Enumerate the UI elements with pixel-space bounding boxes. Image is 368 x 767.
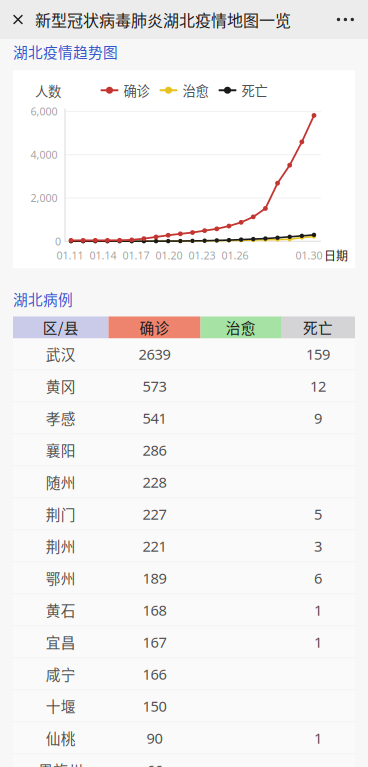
staticText: 541 <box>142 408 166 428</box>
staticText: 6,000 <box>30 104 57 119</box>
staticText: 治愈 <box>226 317 256 338</box>
staticText: 武汉 <box>46 343 76 365</box>
staticText: 221 <box>142 536 166 556</box>
staticText: 90 <box>146 728 162 748</box>
staticText: 167 <box>142 632 166 652</box>
staticText: 01.23 <box>188 248 215 262</box>
button[interactable]: Close <box>0 0 35 39</box>
staticText: 1 <box>314 632 322 652</box>
button[interactable]: 仙桃 <box>13 722 355 754</box>
staticText: 2,000 <box>30 191 57 205</box>
staticText: 孝感 <box>46 407 76 429</box>
staticText: 襄阳 <box>46 439 76 461</box>
button[interactable]: 黄冈 <box>13 370 355 402</box>
staticText: 恩施州 <box>38 759 83 767</box>
staticText: 01.20 <box>155 248 182 262</box>
staticText: 人数 <box>35 81 61 100</box>
staticText: 166 <box>142 664 166 684</box>
staticText: 仙桃 <box>46 727 76 749</box>
button[interactable]: 随州 <box>13 466 355 498</box>
staticText: 6 <box>314 568 322 588</box>
button[interactable]: 十堰 <box>13 690 355 722</box>
button[interactable]: 武汉 <box>13 338 355 370</box>
staticText: 159 <box>306 344 330 364</box>
staticText: 1 <box>314 728 322 748</box>
staticText: 鄂州 <box>46 567 76 589</box>
button[interactable]: 荆门 <box>13 498 355 530</box>
staticText: 66 <box>146 760 162 767</box>
staticText: 死亡 <box>303 317 333 338</box>
staticText: 1 <box>314 600 322 620</box>
staticText: 228 <box>142 472 166 492</box>
staticText: 12 <box>310 376 326 396</box>
staticText: 4,000 <box>30 148 57 162</box>
button[interactable]: 襄阳 <box>13 434 355 466</box>
staticText: 死亡 <box>241 81 267 100</box>
staticText: 日期 <box>324 246 348 264</box>
staticText: 5 <box>314 504 322 524</box>
button[interactable]: 咸宁 <box>13 658 355 690</box>
staticText: 01.11 <box>56 248 83 262</box>
staticText: 01.26 <box>221 248 248 262</box>
button[interactable]: 恩施州 <box>13 754 355 767</box>
staticText: 宜昌 <box>46 631 76 653</box>
staticText: 168 <box>142 600 166 620</box>
staticText: 01.30 <box>295 248 322 262</box>
staticText: 湖北疫情趋势图 <box>13 41 118 62</box>
button[interactable]: 荆州 <box>13 530 355 562</box>
staticText: 随州 <box>46 471 76 493</box>
staticText: 0 <box>55 234 61 248</box>
button[interactable]: More <box>323 0 368 39</box>
staticText: 黄冈 <box>46 375 76 397</box>
staticText: 治愈 <box>182 81 208 100</box>
staticText: 黄石 <box>46 599 76 621</box>
staticText: 01.17 <box>122 248 149 262</box>
staticText: 150 <box>142 696 166 716</box>
staticText: 新型冠状病毒肺炎湖北疫情地图一览 <box>35 8 291 31</box>
staticText: 咸宁 <box>46 663 76 685</box>
staticText: 286 <box>142 440 166 460</box>
button[interactable]: 宜昌 <box>13 626 355 658</box>
staticText: 荆州 <box>46 535 76 557</box>
staticText: 2639 <box>138 344 170 364</box>
staticText: 区/县 <box>43 317 79 338</box>
staticText: 3 <box>314 536 322 556</box>
button[interactable]: 鄂州 <box>13 562 355 594</box>
staticText: 01.14 <box>89 248 116 262</box>
staticText: 确诊 <box>139 317 169 338</box>
staticText: 荆门 <box>46 503 76 525</box>
staticText: 573 <box>142 376 166 396</box>
button[interactable]: 孝感 <box>13 402 355 434</box>
staticText: 227 <box>142 504 166 524</box>
button[interactable]: 黄石 <box>13 594 355 626</box>
staticText: 确诊 <box>123 81 149 100</box>
staticText: 十堰 <box>46 695 76 717</box>
staticText: 9 <box>314 408 322 428</box>
staticText: 湖北病例 <box>13 288 73 309</box>
staticText: 189 <box>142 568 166 588</box>
